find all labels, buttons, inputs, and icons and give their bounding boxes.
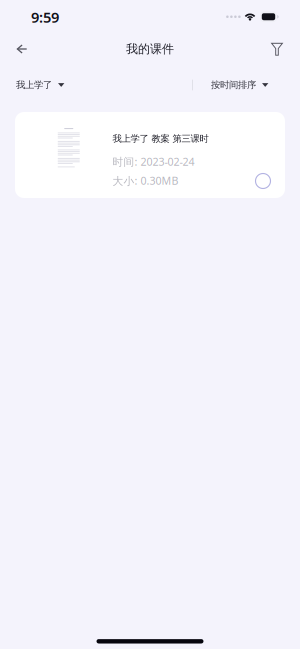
staticText: 9:59	[31, 7, 59, 27]
button[interactable]: 我上学了	[0, 68, 76, 102]
staticText: 我上学了 教案 第三课时	[112, 133, 208, 144]
staticText: 我的课件	[126, 42, 174, 56]
button[interactable]: 按时间排序	[193, 68, 278, 102]
staticText: 我上学了	[16, 79, 52, 91]
staticText: 时间: 2023-02-24	[112, 154, 194, 169]
staticText: 大小: 0.30MB	[112, 174, 178, 188]
button[interactable]: Filter	[260, 34, 294, 64]
button[interactable]: Select	[255, 173, 285, 198]
staticText: 按时间排序	[211, 79, 256, 91]
button[interactable]: Back	[5, 34, 39, 64]
